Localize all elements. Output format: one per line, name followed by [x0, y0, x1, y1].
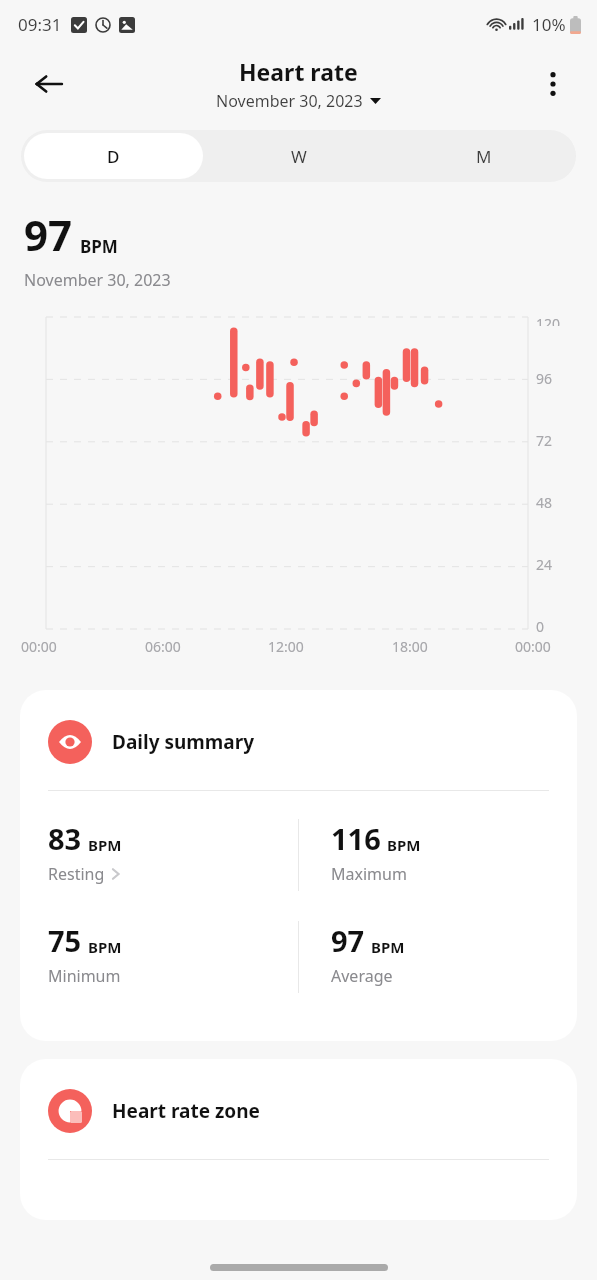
- staticText: 18:00: [392, 637, 428, 656]
- staticText: 24: [536, 555, 553, 574]
- staticText: 0: [536, 617, 545, 636]
- button[interactable]: M: [394, 133, 573, 179]
- staticText: 10%: [532, 13, 566, 36]
- staticText: BPM: [88, 835, 122, 855]
- staticText: 97: [331, 921, 365, 960]
- staticText: Heart rate: [239, 56, 358, 87]
- staticText: Maximum: [331, 863, 407, 885]
- button[interactable]: Back: [26, 61, 72, 107]
- staticText: 96: [536, 369, 553, 388]
- button[interactable]: 116: [331, 819, 577, 885]
- staticText: BPM: [88, 937, 122, 957]
- staticText: Average: [331, 965, 393, 987]
- button[interactable]: 75: [48, 921, 298, 987]
- button[interactable]: Daily summary: [20, 690, 577, 1041]
- button[interactable]: 83: [48, 819, 298, 885]
- staticText: 09:31: [18, 13, 62, 36]
- staticText: BPM: [387, 835, 421, 855]
- staticText: D: [107, 145, 120, 168]
- staticText: 72: [536, 431, 553, 450]
- staticText: W: [291, 145, 307, 168]
- staticText: 06:00: [145, 637, 181, 656]
- button[interactable]: More options: [531, 62, 575, 106]
- button[interactable]: W: [209, 133, 388, 179]
- staticText: 120: [536, 314, 561, 326]
- staticText: 116: [331, 819, 381, 858]
- staticText: 00:00: [515, 637, 551, 656]
- staticText: M: [476, 145, 492, 168]
- staticText: November 30, 2023: [216, 90, 363, 112]
- staticText: 75: [48, 921, 82, 960]
- staticText: BPM: [80, 235, 118, 258]
- staticText: Daily summary: [112, 729, 255, 755]
- staticText: Resting: [48, 863, 105, 885]
- button[interactable]: Heart rate zone: [20, 1059, 577, 1220]
- staticText: Minimum: [48, 965, 121, 987]
- staticText: 00:00: [21, 637, 57, 656]
- button[interactable]: 97: [331, 921, 577, 987]
- button[interactable]: November 30, 2023: [216, 90, 381, 112]
- staticText: 83: [48, 819, 82, 858]
- staticText: November 30, 2023: [24, 269, 171, 291]
- staticText: 48: [536, 493, 553, 512]
- button[interactable]: D: [24, 133, 203, 179]
- staticText: 97: [24, 206, 73, 263]
- staticText: Heart rate zone: [112, 1098, 260, 1124]
- staticText: BPM: [371, 937, 405, 957]
- staticText: 12:00: [268, 637, 304, 656]
